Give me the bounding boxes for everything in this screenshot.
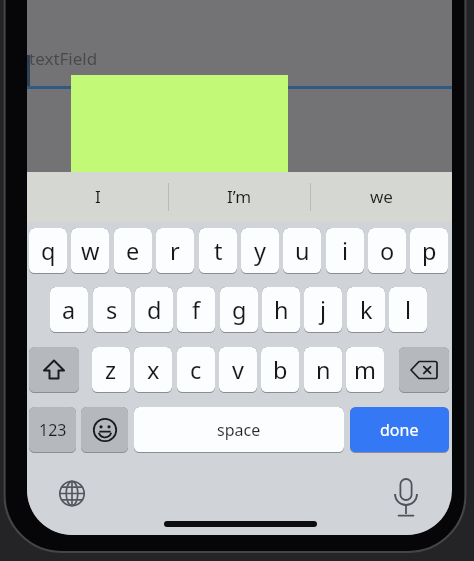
button[interactable]: c [177,347,215,393]
button[interactable]: g [220,287,258,333]
staticText: b [273,354,288,386]
staticText: i [342,235,349,267]
button[interactable]: a [50,287,88,333]
button[interactable]: we [311,181,451,212]
staticText: x [147,354,160,386]
staticText: w [81,235,100,267]
staticText: q [41,235,56,267]
button[interactable]: t [199,228,237,274]
button[interactable]: w [71,228,109,274]
staticText: I’m [227,185,252,208]
button[interactable]: y [241,228,279,274]
button[interactable]: d [135,287,173,333]
button[interactable]: I’m [169,181,309,212]
button[interactable]: o [368,228,406,274]
staticText: e [126,235,140,267]
staticText: l [405,294,412,326]
staticText: j [320,294,327,326]
staticText: o [380,235,395,267]
button[interactable]: k [347,287,385,333]
button[interactable] [399,347,449,393]
staticText: p [422,235,437,267]
staticText: d [147,294,162,326]
staticText: m [354,354,376,386]
staticText: z [105,354,117,386]
staticText: textField [29,47,98,70]
staticText: c [190,354,202,386]
button[interactable] [29,347,79,393]
staticText: I [95,185,101,208]
button[interactable]: f [177,287,215,333]
button[interactable]: p [410,228,448,274]
button[interactable]: j [304,287,342,333]
staticText: n [316,354,331,386]
staticText: y [254,235,266,267]
staticText: we [370,185,393,208]
button[interactable]: l [389,287,427,333]
button[interactable]: space [134,407,344,453]
button[interactable]: q [29,228,67,274]
button[interactable]: v [219,347,257,393]
button[interactable]: I [28,181,168,212]
staticText: g [232,294,247,326]
staticText: h [274,294,289,326]
button[interactable]: i [326,228,364,274]
button[interactable]: u [283,228,321,274]
button[interactable]: r [156,228,194,274]
button[interactable]: e [114,228,152,274]
staticText: done [380,419,419,441]
button[interactable]: s [93,287,131,333]
button[interactable] [59,480,85,507]
button[interactable]: 123 [29,407,76,453]
button[interactable] [391,477,421,519]
staticText: t [214,235,223,267]
button[interactable]: n [304,347,342,393]
button[interactable]: m [346,347,384,393]
button[interactable]: done [350,407,449,453]
button[interactable] [81,407,128,453]
staticText: f [192,294,201,326]
staticText: v [232,354,244,386]
button[interactable]: b [261,347,299,393]
staticText: a [62,294,76,326]
button[interactable]: x [134,347,172,393]
button[interactable]: z [92,347,130,393]
staticText: k [360,294,373,326]
staticText: u [295,235,310,267]
button[interactable]: h [262,287,300,333]
staticText: space [217,419,261,441]
staticText: s [106,294,118,326]
staticText: 123 [39,419,67,441]
staticText: r [170,235,180,267]
